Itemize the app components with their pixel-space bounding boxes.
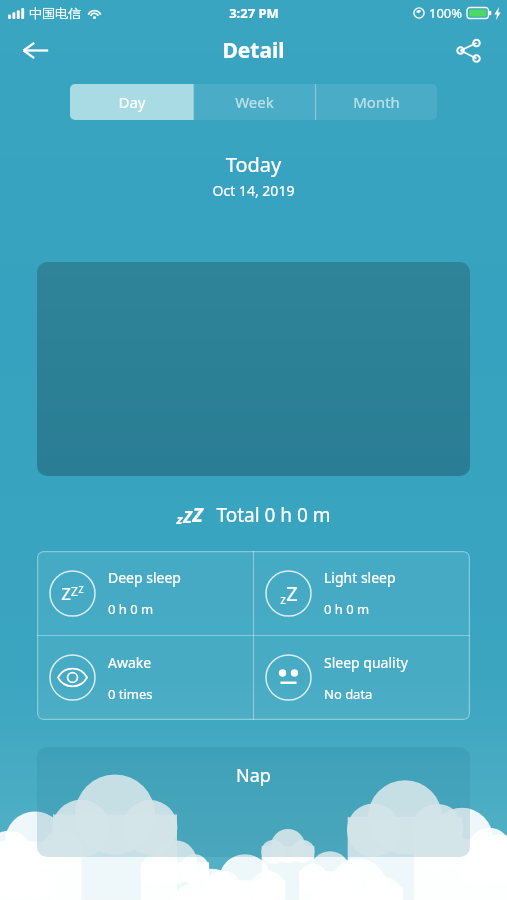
staticText: 0 times: [108, 685, 153, 703]
staticText: Z: [192, 502, 203, 528]
staticText: z: [280, 591, 286, 607]
staticText: Day: [118, 92, 146, 112]
staticText: Detail: [222, 36, 285, 65]
staticText: 0 h 0 m: [108, 600, 154, 618]
staticText: Awake: [108, 653, 152, 672]
staticText: Z: [61, 582, 71, 605]
staticText: Week: [235, 92, 274, 112]
staticText: 3:27 PM: [229, 4, 279, 22]
button[interactable]: Day: [70, 84, 193, 120]
button[interactable]: Awake: [37, 635, 253, 720]
button[interactable]: z: [253, 551, 470, 635]
staticText: Nap: [37, 763, 470, 788]
button[interactable]: Nap: [37, 747, 470, 857]
staticText: Light sleep: [324, 568, 396, 587]
staticText: Month: [353, 92, 400, 112]
button[interactable]: Week: [193, 84, 315, 120]
button[interactable]: Z: [37, 551, 253, 635]
staticText: Z: [78, 583, 84, 595]
staticText: Oct 14, 2019: [0, 181, 507, 200]
staticText: Z: [71, 583, 78, 599]
staticText: 100%: [429, 4, 463, 22]
staticText: Today: [0, 151, 507, 178]
staticText: Deep sleep: [108, 568, 181, 587]
button[interactable]: Back: [12, 27, 58, 73]
staticText: Total 0 h 0 m: [216, 502, 331, 528]
staticText: 中国电信: [29, 5, 81, 21]
staticText: No data: [324, 685, 373, 703]
button[interactable]: Sleep quality: [253, 635, 470, 720]
button[interactable]: Month: [315, 84, 437, 120]
staticText: Z: [183, 506, 192, 528]
staticText: Sleep quality: [324, 653, 408, 672]
staticText: Z: [286, 580, 298, 607]
staticText: 0 h 0 m: [324, 600, 370, 618]
staticText: z: [176, 510, 183, 528]
button[interactable]: Share: [445, 27, 491, 73]
